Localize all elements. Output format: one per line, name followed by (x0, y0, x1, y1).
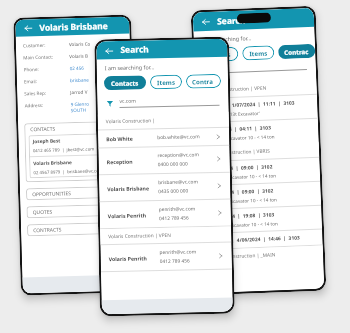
staticText: Sales Rep: (24, 89, 70, 96)
staticText: QUOTES (32, 209, 53, 216)
staticText: vc.com (119, 98, 136, 105)
staticText: Contracts & Quotes (192, 77, 215, 85)
button[interactable]: Items (242, 45, 274, 60)
staticText: Volaris Brisbane (33, 159, 72, 167)
staticText: Phone: (23, 65, 70, 72)
button[interactable]: OPPORTUNITIES (26, 186, 128, 200)
staticText: 24/06/2024 | 04:11 | 3103 (205, 124, 271, 134)
staticText: Contacts (111, 78, 139, 87)
button[interactable]: CONTACTS (24, 121, 128, 182)
staticText: 0412 789 456 (160, 257, 190, 265)
staticText: 26/06/2024 | 09:00 | 3102 (207, 163, 273, 173)
staticText: I am searching for... (202, 34, 252, 43)
button[interactable]: Contracts & Quotes (278, 44, 315, 59)
staticText: Volaris Penrith (109, 254, 160, 262)
staticText: 8201 | 'LC 13t Excavator' (204, 110, 261, 118)
button[interactable]: Volaris Brisbane (99, 173, 230, 201)
staticText: Search (120, 43, 149, 56)
button[interactable]: Joseph Best (28, 133, 123, 156)
staticText: Contacts (203, 50, 231, 59)
staticText: Items (157, 78, 175, 86)
staticText: CONTACTS (30, 126, 55, 133)
staticText: Volaris Construction | VPEN (108, 232, 171, 240)
button[interactable]: Contacts (196, 47, 238, 62)
button[interactable]: QUOTES (26, 204, 129, 218)
staticText: Volaris Brisbane (39, 20, 109, 34)
staticText: Volaris Construction | _MAIN (210, 251, 276, 261)
button[interactable]: Back (200, 16, 211, 27)
button[interactable]: Back (22, 22, 34, 33)
staticText: SOUTH (71, 107, 88, 113)
staticText: Volaris Penrith (108, 211, 159, 219)
staticText: 0400 000 000 (158, 160, 188, 168)
staticText: Main Contact: (23, 53, 69, 60)
staticText: Jarrod V (70, 89, 88, 95)
staticText: penrith@vc.com (159, 205, 196, 213)
button[interactable]: Volaris Brisbane (29, 155, 123, 178)
staticText: 3103166 | 1/07/2024 | 11:11 | 3103 (204, 100, 295, 110)
staticText: Search (217, 14, 246, 27)
staticText: Volaris Construction | VBRIS (206, 148, 270, 157)
staticText: 3101 | Excavator 10 - < 14 ton (207, 172, 276, 181)
button[interactable]: CONTRACTS (27, 221, 129, 236)
staticText: CONTRACTS (33, 226, 62, 234)
button[interactable]: 24/06/2024 | 04:11 | 3103 (197, 119, 319, 146)
staticText: 02 4567 8979 | brisbane@vc.com (33, 167, 103, 175)
staticText: Items (249, 49, 267, 57)
staticText: 26/06/2024 | 09:00 | 3102 (207, 187, 274, 197)
staticText: Contracts & Quotes (284, 47, 309, 56)
staticText: Reception (107, 157, 158, 165)
staticText: Volaris Construction | (106, 117, 156, 125)
button[interactable]: 26/06/2024 | 09:00 | 3102 (199, 182, 321, 209)
button[interactable]: Bob White (98, 128, 229, 147)
button[interactable]: Reception (98, 146, 230, 174)
staticText: 3101 | Excavator 10 - < 14 ton (205, 133, 275, 142)
button[interactable]: 11/06/2024 | 19:08 | 3103 (200, 206, 322, 233)
staticText: Address: (24, 101, 71, 108)
staticText: Volaris Construction | VPEN (203, 85, 267, 94)
staticText: brisbane (70, 77, 89, 83)
staticText: OPPORTUNITIES (32, 190, 71, 198)
staticText: brisbane@vc.com (158, 178, 198, 186)
button[interactable]: Contracts & Quotes (186, 74, 221, 88)
staticText: Volaris Brisbane (107, 184, 158, 192)
staticText: 3109146 | 4/06/2024 | 14:46 | 3103 (209, 234, 300, 245)
button[interactable]: 26/06/2024 | 09:00 | 3102 (198, 158, 320, 185)
staticText: bob.white@vc.com (157, 133, 200, 141)
staticText: 9 Glenro (70, 101, 90, 107)
staticText: reception@vc.com (157, 151, 200, 159)
button[interactable]: Volaris Penrith (100, 243, 232, 271)
staticText: Joseph Best (32, 137, 61, 145)
staticText: 02 456 (69, 65, 85, 71)
staticText: 11/06/2024 | 19:08 | 3103 (208, 211, 275, 221)
staticText: 0412 465 789 | jbest@vc.com (33, 145, 95, 153)
staticText: Customer: (23, 41, 69, 48)
button[interactable]: Back (103, 45, 114, 56)
button[interactable]: Volaris Penrith (99, 200, 231, 228)
button[interactable]: Items (150, 75, 182, 89)
staticText: 3101 | Excavator 10 - < 14 ton (208, 196, 277, 205)
staticText: 0435 000 000 (158, 187, 188, 195)
staticText: penrith@vc.com (159, 248, 197, 256)
staticText: Volaris Co (69, 40, 91, 47)
button[interactable]: 3103166 | 1/07/2024 | 11:11 | 3103 (196, 95, 318, 122)
staticText: I am searching for... (105, 63, 155, 71)
button[interactable]: Contacts (104, 75, 146, 90)
button[interactable]: 3109146 | 4/06/2024 | 14:46 | 3103 (201, 230, 323, 249)
staticText: Email: (24, 77, 70, 84)
staticText: 3101 | Excavator 10 - < 14 ton (209, 220, 278, 229)
staticText: Bob White (106, 134, 157, 142)
staticText: 0412 789 456 (159, 214, 189, 222)
staticText: Volaris B (69, 53, 88, 59)
